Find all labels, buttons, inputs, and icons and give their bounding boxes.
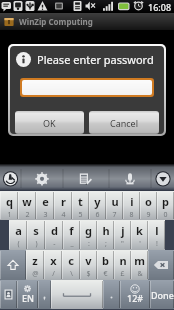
staticText: Please enter password xyxy=(37,52,154,67)
button[interactable]: Password field xyxy=(22,80,152,95)
staticText: " xyxy=(121,239,124,249)
staticText: d xyxy=(51,223,58,238)
staticText: n xyxy=(119,253,127,268)
staticText: £ xyxy=(120,269,125,279)
staticText: 7 xyxy=(112,210,117,220)
staticText: 1 xyxy=(7,210,12,220)
button[interactable]: Cancel xyxy=(89,111,159,134)
staticText: h xyxy=(102,223,110,238)
staticText: c xyxy=(68,253,74,268)
button[interactable]: c xyxy=(62,250,80,280)
staticText: y xyxy=(94,194,101,209)
staticText: ; xyxy=(105,239,107,249)
staticText: z xyxy=(32,253,38,268)
staticText: t xyxy=(78,194,83,209)
staticText: k xyxy=(136,223,143,238)
button[interactable]: h xyxy=(97,220,114,250)
staticText: Cancel xyxy=(110,117,139,129)
staticText: 4 xyxy=(61,210,66,220)
button[interactable]: n xyxy=(114,250,131,280)
staticText: 9 xyxy=(146,210,151,220)
button[interactable]: Period xyxy=(103,280,120,309)
staticText: b xyxy=(102,253,109,268)
staticText: r xyxy=(61,194,66,209)
staticText: m xyxy=(134,253,145,268)
staticText: p xyxy=(162,194,169,209)
button[interactable]: Backspace xyxy=(148,250,174,280)
staticText: s xyxy=(33,223,39,238)
staticText: x xyxy=(50,253,57,268)
staticText: @ xyxy=(32,269,39,279)
button[interactable]: m xyxy=(131,250,148,280)
staticText: Done xyxy=(151,289,174,301)
staticText: q xyxy=(6,194,13,209)
button[interactable]: Language EN xyxy=(17,280,38,309)
button[interactable]: t xyxy=(72,191,89,220)
staticText: & xyxy=(137,269,143,279)
button[interactable]: q xyxy=(0,191,18,220)
button[interactable]: j xyxy=(114,220,131,250)
staticText: _ xyxy=(70,239,74,249)
button[interactable]: g xyxy=(80,220,97,250)
staticText: ' xyxy=(139,239,141,249)
staticText: - xyxy=(53,239,56,249)
staticText: 0 xyxy=(163,210,168,220)
button[interactable]: p xyxy=(157,191,174,220)
staticText: 12# xyxy=(127,292,144,304)
button[interactable]: d xyxy=(45,220,63,250)
button[interactable]: l xyxy=(148,220,165,250)
button[interactable]: x xyxy=(44,250,62,280)
staticText: g xyxy=(85,223,92,238)
button[interactable]: Space xyxy=(51,280,103,309)
staticText: OK xyxy=(43,117,56,129)
button[interactable]: f xyxy=(63,220,80,250)
staticText: € xyxy=(103,269,108,279)
staticText: 16:08 xyxy=(148,1,172,13)
staticText: / xyxy=(52,269,55,279)
staticText: 5 xyxy=(78,210,83,220)
staticText: e xyxy=(42,194,49,209)
staticText: 6 xyxy=(95,210,100,220)
button[interactable]: Shift xyxy=(0,250,26,280)
button[interactable]: Symbols xyxy=(120,280,150,309)
button[interactable]: u xyxy=(106,191,123,220)
staticText: ! xyxy=(156,239,158,249)
staticText: \ xyxy=(70,269,73,279)
button[interactable]: Keyboard toolbar xyxy=(0,164,174,191)
staticText: 2 xyxy=(25,210,30,220)
staticText: i xyxy=(130,194,134,209)
button[interactable]: Done xyxy=(150,280,174,309)
staticText: w xyxy=(22,194,32,209)
button[interactable]: e xyxy=(36,191,54,220)
staticText: ) xyxy=(35,239,38,249)
staticText: WinZip Computing xyxy=(19,16,93,27)
button[interactable]: s xyxy=(27,220,45,250)
staticText: 3 xyxy=(43,210,48,220)
button[interactable]: z xyxy=(26,250,44,280)
button[interactable]: o xyxy=(140,191,157,220)
staticText: EN xyxy=(22,292,34,304)
staticText: ( xyxy=(17,239,20,249)
button[interactable]: k xyxy=(131,220,148,250)
button[interactable]: Input method xyxy=(0,280,17,309)
staticText: : xyxy=(88,239,90,249)
staticText: u xyxy=(111,194,119,209)
staticText: o xyxy=(145,194,152,209)
staticText: l xyxy=(155,223,159,238)
staticText: 8 xyxy=(129,210,134,220)
staticText: v xyxy=(85,253,92,268)
button[interactable]: y xyxy=(89,191,106,220)
button[interactable]: Comma xyxy=(38,280,51,309)
button[interactable]: OK xyxy=(15,111,84,134)
button[interactable]: w xyxy=(18,191,36,220)
staticText: $ xyxy=(86,269,91,279)
button[interactable]: v xyxy=(80,250,97,280)
button[interactable]: i xyxy=(123,191,140,220)
button[interactable]: r xyxy=(54,191,72,220)
button[interactable]: a xyxy=(9,220,27,250)
button[interactable]: b xyxy=(97,250,114,280)
staticText: a xyxy=(15,223,22,238)
staticText: f xyxy=(69,223,74,238)
staticText: j xyxy=(121,223,125,238)
